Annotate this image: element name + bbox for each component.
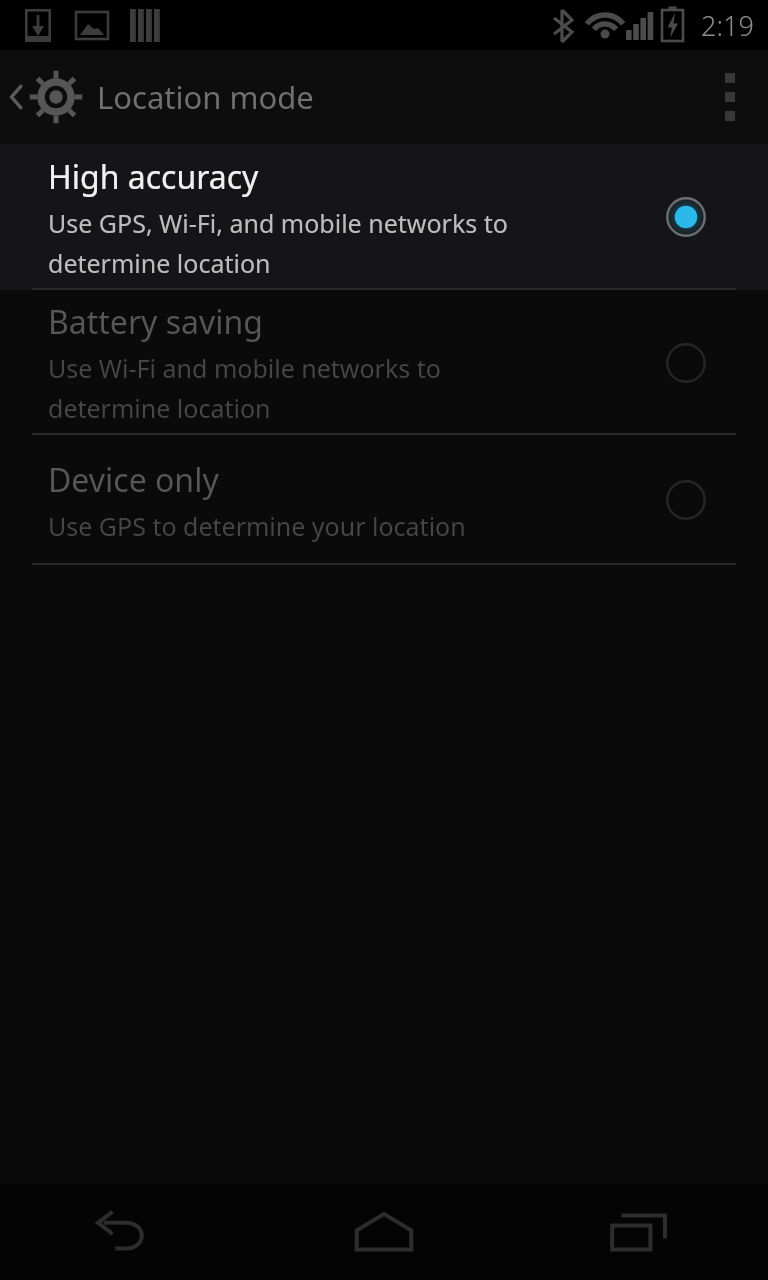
staticText: determine location — [48, 391, 271, 425]
button[interactable]: Home — [256, 1184, 512, 1280]
staticText: Use Wi-Fi and mobile networks to — [48, 351, 441, 385]
staticText: Use GPS, Wi-Fi, and mobile networks to — [48, 206, 508, 240]
staticText: Use GPS to determine your location — [48, 509, 466, 543]
button[interactable]: Navigate up — [0, 50, 90, 144]
staticText: determine location — [48, 246, 271, 280]
staticText: 2:19 — [701, 7, 754, 44]
staticText: Location mode — [97, 76, 314, 118]
button[interactable]: Back — [0, 1184, 256, 1280]
button[interactable]: High accuracy — [0, 144, 768, 290]
staticText: Battery saving — [48, 300, 264, 344]
button[interactable]: Battery saving — [0, 290, 768, 435]
button[interactable]: More options — [692, 50, 768, 144]
staticText: High accuracy — [48, 155, 259, 199]
button[interactable]: Device only — [0, 435, 768, 565]
staticText: Device only — [48, 458, 219, 502]
button[interactable]: Recent apps — [512, 1184, 768, 1280]
